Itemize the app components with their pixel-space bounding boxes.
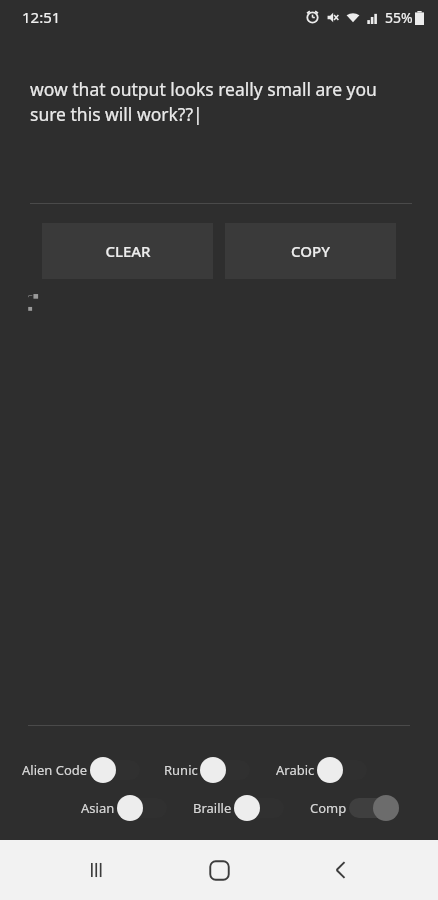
staticText: Asian xyxy=(81,799,115,817)
staticText: CLEAR xyxy=(105,241,151,261)
button[interactable]: Comp xyxy=(310,795,399,821)
button[interactable]: CLEAR xyxy=(42,223,213,279)
staticText: Braille xyxy=(193,799,232,817)
button[interactable]: Braille xyxy=(193,795,284,821)
staticText: Runic xyxy=(164,761,198,779)
button[interactable]: Runic xyxy=(164,757,250,783)
staticText: Arabic xyxy=(276,761,315,779)
button[interactable]: Recent apps xyxy=(74,846,122,894)
button[interactable]: COPY xyxy=(225,223,396,279)
staticText: COPY xyxy=(291,241,330,261)
staticText: 12:51 xyxy=(22,7,61,27)
staticText: ⌐■ xyxy=(28,292,39,299)
button[interactable]: Asian xyxy=(81,795,167,821)
staticText: 55% xyxy=(385,8,413,27)
button[interactable]: Alien Code xyxy=(22,757,140,783)
staticText: Alien Code xyxy=(22,761,88,779)
staticText: Comp xyxy=(310,799,347,817)
button[interactable]: Back xyxy=(317,846,365,894)
button[interactable]: Arabic xyxy=(276,757,367,783)
button[interactable]: Home xyxy=(195,846,243,894)
staticText: wow that output looks really small are y… xyxy=(30,77,412,126)
staticText: ■ xyxy=(28,305,33,311)
